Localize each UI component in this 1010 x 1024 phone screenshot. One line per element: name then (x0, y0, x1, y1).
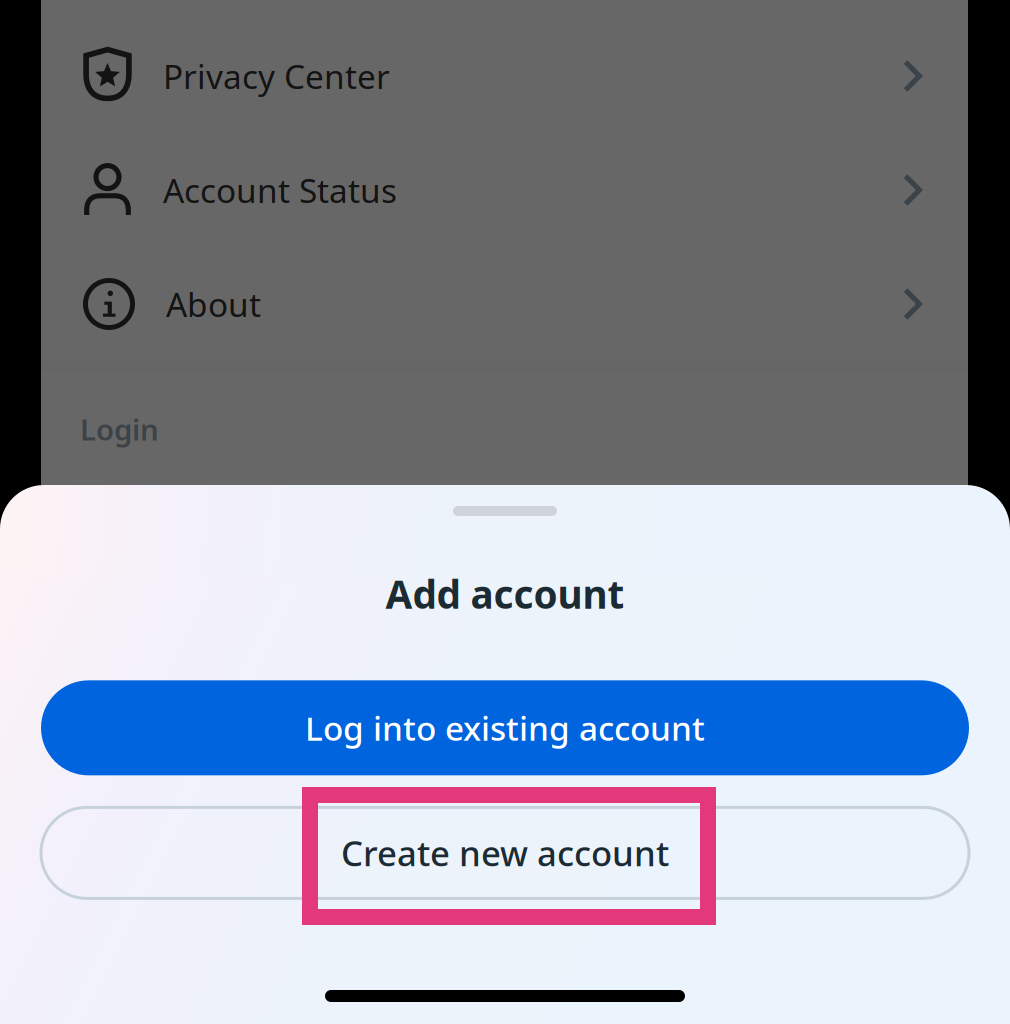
staticText: Account Status (163, 168, 397, 212)
staticText: Log into existing account (305, 706, 705, 750)
button[interactable]: Privacy Center (41, 19, 968, 133)
staticText: Login (80, 409, 159, 448)
button[interactable]: Account Status (41, 133, 968, 247)
button[interactable]: Create new account (41, 807, 969, 898)
button[interactable]: About (41, 247, 968, 361)
staticText: Add account (385, 568, 624, 619)
staticText: Create new account (341, 830, 669, 876)
button[interactable]: Log into existing account (41, 680, 969, 775)
staticText: About (166, 282, 261, 326)
staticText: Privacy Center (163, 54, 390, 98)
